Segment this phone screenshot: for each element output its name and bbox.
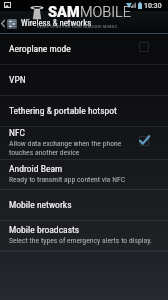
staticText: Mobile networks	[9, 199, 72, 210]
staticText: NFC	[9, 127, 25, 138]
button[interactable]: Tethering & portable hotspot	[0, 96, 168, 126]
staticText: MOBILE	[80, 4, 131, 21]
staticText: Android Beam	[9, 163, 63, 174]
button[interactable]: Aeroplane mode	[0, 34, 168, 64]
button[interactable]: NFC	[136, 133, 152, 149]
staticText: Wireless & networks	[21, 18, 92, 28]
staticText: Ready to transmit app content via NFC	[9, 175, 126, 184]
button[interactable]: Mobile networks	[0, 190, 168, 220]
staticText: 10:30	[144, 1, 162, 10]
staticText: EVERYTHING FOR YOUR SAMSUNG MOBILE	[37, 24, 118, 29]
staticText: Select the types of emergency alerts to …	[9, 236, 153, 245]
button[interactable]: VPN	[0, 65, 168, 95]
staticText: touches another device	[9, 148, 80, 157]
staticText: Mobile broadcasts	[9, 224, 80, 235]
staticText: SAM	[48, 4, 80, 21]
staticText: Aeroplane mode	[9, 43, 71, 54]
staticText: Allow data exchange when the phone	[9, 139, 122, 148]
button[interactable]: NFC	[0, 127, 168, 159]
button[interactable]: Android Beam	[0, 160, 168, 189]
staticText: VPN	[9, 74, 26, 85]
button[interactable]: Navigate up	[0, 11, 19, 34]
button[interactable]: Aeroplane mode	[136, 39, 152, 55]
button[interactable]: Mobile broadcasts	[0, 221, 168, 250]
staticText: Tethering & portable hotspot	[9, 105, 117, 116]
